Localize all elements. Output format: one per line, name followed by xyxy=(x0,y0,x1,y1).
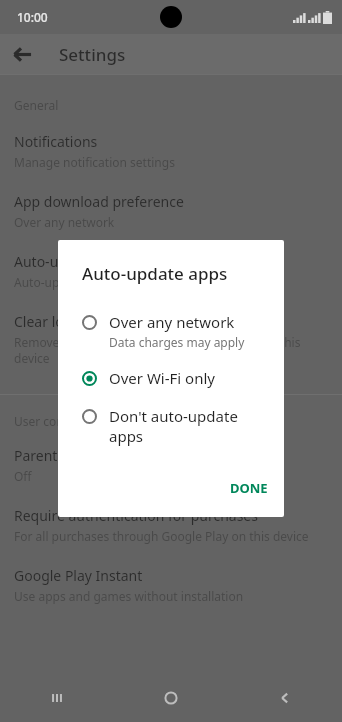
staticText: User controls xyxy=(14,413,89,429)
staticText: Don't auto-update apps xyxy=(109,406,268,446)
staticText: Notifications xyxy=(14,132,98,151)
button[interactable]: DONE xyxy=(214,473,284,503)
staticText: For all purchases through Google Play on… xyxy=(14,528,309,544)
staticText: General xyxy=(14,97,59,113)
staticText: DONE xyxy=(230,479,268,497)
staticText: Settings xyxy=(59,43,126,66)
button[interactable]: Over any network xyxy=(58,307,284,363)
button[interactable]: Don't auto-update apps xyxy=(58,401,284,459)
button[interactable]: Recents xyxy=(0,674,114,722)
staticText: Auto-update apps over Wi-Fi only xyxy=(14,274,201,290)
button[interactable]: Back xyxy=(0,34,44,74)
staticText: Auto-update apps xyxy=(82,262,228,285)
button[interactable]: Over Wi-Fi only xyxy=(58,363,284,401)
staticText: Use apps and games without installation xyxy=(14,588,244,604)
button[interactable]: Require authentication for purchases xyxy=(0,506,342,566)
staticText: Auto-update apps xyxy=(14,252,132,271)
staticText: 10:00 xyxy=(17,9,48,25)
button[interactable]: Back xyxy=(228,674,342,722)
button[interactable]: Notifications xyxy=(0,132,342,192)
staticText: Require authentication for purchases xyxy=(14,506,258,525)
staticText: Over any network xyxy=(109,312,235,332)
button[interactable]: Parental controls xyxy=(0,446,342,506)
button[interactable]: Clear local search history xyxy=(0,312,342,388)
staticText: Removes all the searches you've performe… xyxy=(14,334,328,366)
staticText: Over any network xyxy=(14,214,115,230)
staticText: Clear local search history xyxy=(14,312,178,331)
staticText: Manage notification settings xyxy=(14,154,175,170)
button[interactable]: Auto-update apps xyxy=(0,252,342,312)
staticText: Parental controls xyxy=(14,446,126,465)
staticText: Data charges may apply xyxy=(109,334,245,350)
staticText: Over Wi-Fi only xyxy=(109,368,215,388)
button[interactable]: Google Play Instant xyxy=(0,566,342,626)
staticText: Google Play Instant xyxy=(14,566,143,585)
button[interactable]: Home xyxy=(114,674,228,722)
button[interactable]: App download preference xyxy=(0,192,342,252)
staticText: Off xyxy=(14,468,32,484)
staticText: App download preference xyxy=(14,192,184,211)
